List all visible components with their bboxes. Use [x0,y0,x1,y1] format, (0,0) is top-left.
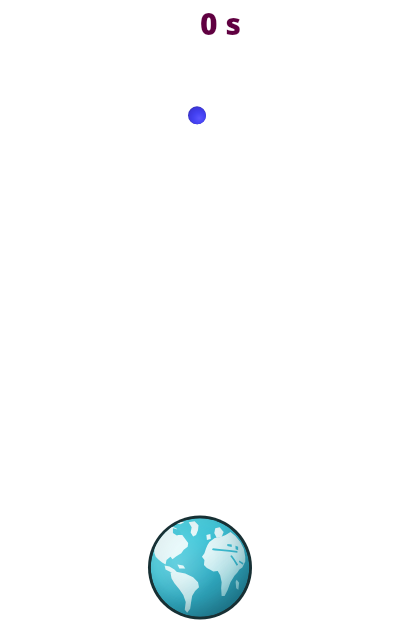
staticText: 0 s [200,3,241,44]
button[interactable]: 0 s [200,3,241,44]
